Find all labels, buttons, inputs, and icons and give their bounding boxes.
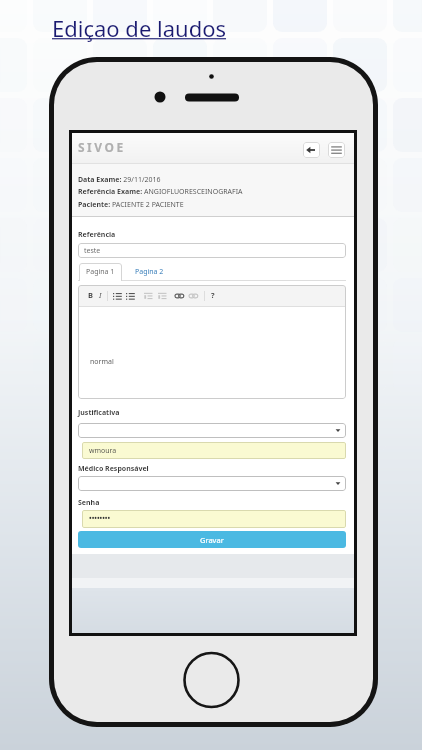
button[interactable]	[78, 423, 346, 438]
staticText: Senha	[78, 498, 100, 508]
staticText: Referência	[78, 230, 116, 240]
staticText: Paciente: PACIENTE 2 PACIENTE	[78, 200, 184, 210]
button[interactable]: teste	[78, 243, 346, 258]
staticText: Pagina 2	[135, 267, 164, 277]
button[interactable]: Gravar	[78, 531, 346, 548]
staticText: Pagina 1	[86, 267, 115, 277]
staticText: Referência Exame: ANGIOFLUORESCEINOGRAFI…	[78, 187, 243, 197]
staticText: Justificativa	[78, 408, 120, 418]
staticText: Ediçao de laudos	[52, 13, 227, 43]
button[interactable]: Pagina 2	[130, 263, 168, 281]
staticText: I	[99, 290, 102, 300]
staticText: wmoura	[89, 446, 117, 456]
button[interactable]	[303, 142, 320, 158]
staticText: normal	[90, 357, 114, 367]
staticText: ••••••••	[89, 514, 111, 524]
staticText: ?	[211, 290, 215, 300]
button[interactable]: Pagina 1	[79, 263, 122, 281]
staticText: teste	[84, 246, 101, 256]
button[interactable]: wmoura	[82, 442, 346, 459]
staticText: SIVOE	[78, 139, 126, 155]
button[interactable]	[78, 476, 346, 491]
staticText: B	[88, 290, 93, 300]
button[interactable]	[328, 142, 345, 158]
staticText: Médico Responsável	[78, 464, 149, 474]
button[interactable]: ••••••••	[82, 510, 346, 528]
staticText: Gravar	[200, 535, 224, 545]
staticText: Data Exame: 29/11/2016	[78, 175, 161, 185]
